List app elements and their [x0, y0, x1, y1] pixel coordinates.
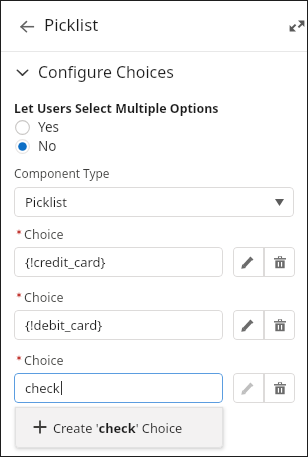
staticText: Choice — [24, 289, 64, 306]
staticText: Configure Choices — [38, 61, 174, 83]
button[interactable]: Expand — [287, 16, 307, 36]
button[interactable]: No — [15, 139, 57, 154]
staticText: No — [38, 137, 57, 152]
button[interactable]: Delete — [264, 310, 295, 340]
staticText: Component Type — [14, 165, 110, 181]
button[interactable]: check — [14, 373, 223, 403]
button[interactable]: Delete — [264, 247, 295, 277]
staticText: Yes — [38, 118, 60, 133]
button[interactable]: Delete — [264, 373, 295, 403]
staticText: check — [25, 379, 60, 397]
button[interactable]: Back — [13, 14, 41, 41]
staticText: {!debit_card} — [25, 316, 103, 334]
button[interactable]: {!credit_card} — [14, 247, 223, 277]
button[interactable]: Configure Choices — [1, 60, 307, 84]
button[interactable]: Create 'check' Choice — [15, 407, 223, 448]
staticText: Create 'check' Choice — [53, 419, 183, 436]
button[interactable]: Edit — [233, 310, 264, 340]
staticText: Picklist — [25, 193, 68, 211]
staticText: Picklist — [44, 13, 99, 36]
button[interactable]: Edit — [233, 247, 264, 277]
button[interactable]: Picklist — [14, 187, 294, 217]
staticText: Let Users Select Multiple Options — [14, 100, 219, 117]
staticText: Choice — [24, 226, 64, 243]
button[interactable]: {!debit_card} — [14, 310, 223, 340]
staticText: Choice — [24, 352, 64, 369]
button[interactable]: Edit — [233, 373, 264, 403]
staticText: {!credit_card} — [25, 253, 106, 271]
button[interactable]: Yes — [15, 120, 60, 135]
